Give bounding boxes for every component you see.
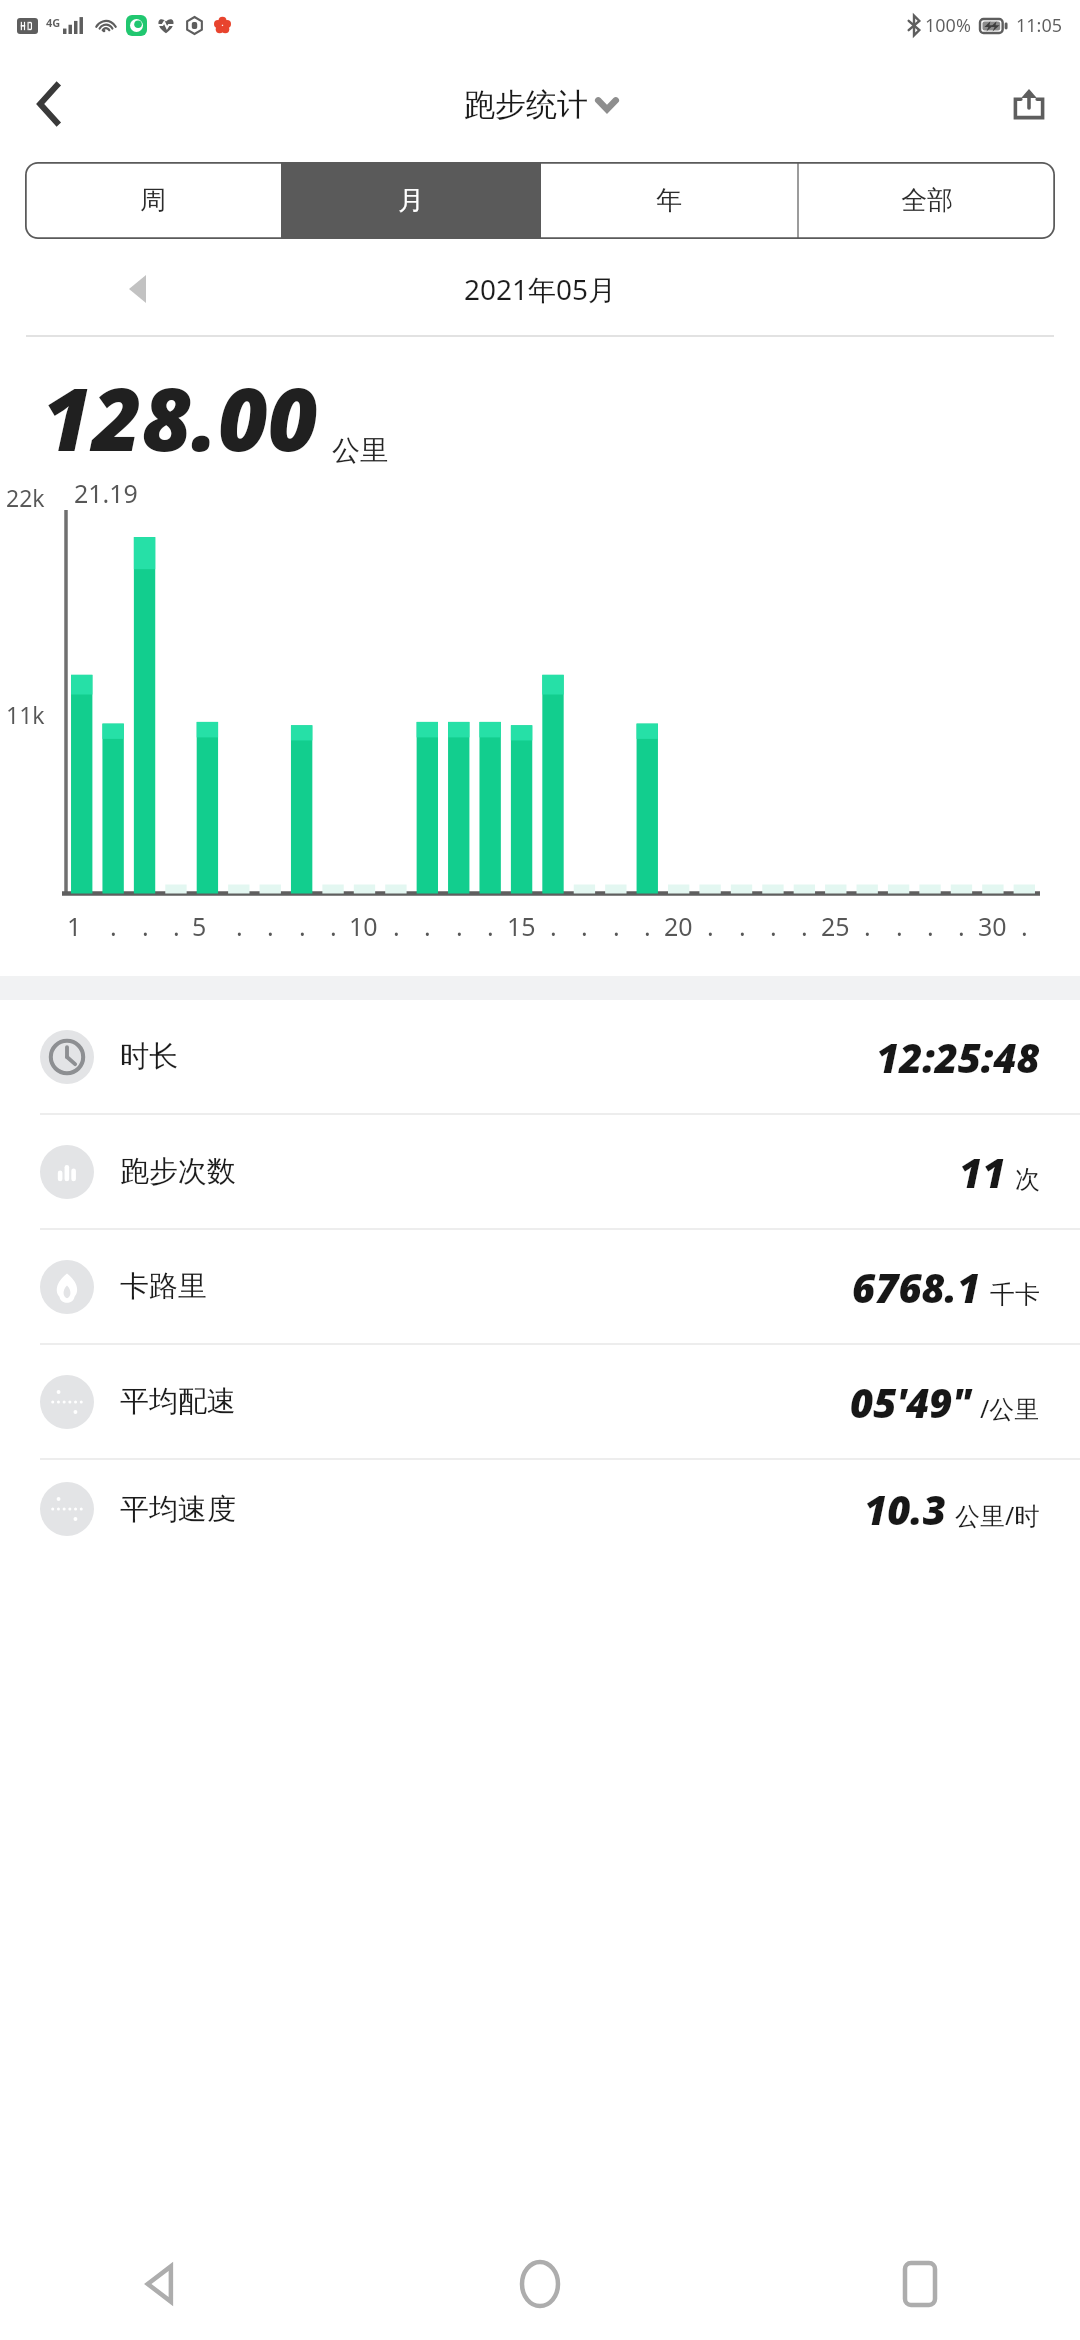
staticText: . xyxy=(424,909,431,943)
button[interactable]: 年 xyxy=(541,162,797,239)
button[interactable]: 平均配速 xyxy=(0,1345,1080,1458)
staticText: . xyxy=(330,909,337,943)
staticText: . xyxy=(110,909,117,943)
staticText: 6768.1 xyxy=(852,1260,981,1314)
button[interactable]: 周 xyxy=(25,162,281,239)
staticText: 公里/时 xyxy=(955,1498,1040,1532)
staticText: . xyxy=(707,909,714,943)
staticText: . xyxy=(1021,909,1028,943)
staticText: 月 xyxy=(398,184,424,217)
button[interactable]: Home xyxy=(498,2242,582,2326)
staticText: 11:05 xyxy=(1016,13,1063,38)
staticText: 11 xyxy=(959,1145,1006,1199)
staticText: 跑步次数 xyxy=(120,1153,236,1190)
staticText: . xyxy=(644,909,651,943)
staticText: . xyxy=(393,909,400,943)
button[interactable]: 时长 xyxy=(0,1000,1080,1113)
staticText: 卡路里 xyxy=(120,1268,207,1305)
staticText: 4G xyxy=(46,15,61,30)
staticText: . xyxy=(267,909,274,943)
button[interactable]: 跑步统计 xyxy=(464,85,617,124)
staticText: . xyxy=(173,909,180,943)
staticText: 22k xyxy=(6,482,45,513)
staticText: 25 xyxy=(821,909,850,943)
staticText: . xyxy=(550,909,557,943)
staticText: . xyxy=(142,909,149,943)
button[interactable]: 月 xyxy=(283,162,539,239)
staticText: /公里 xyxy=(980,1391,1040,1425)
staticText: . xyxy=(958,909,965,943)
button[interactable]: Recents xyxy=(878,2242,962,2326)
staticText: 时长 xyxy=(120,1038,178,1075)
staticText: . xyxy=(299,909,306,943)
staticText: . xyxy=(487,909,494,943)
staticText: 跑步统计 xyxy=(464,85,588,124)
staticText: 平均配速 xyxy=(120,1383,236,1420)
staticText: 全部 xyxy=(901,184,953,217)
staticText: . xyxy=(896,909,903,943)
button[interactable]: Share xyxy=(994,69,1064,139)
staticText: 平均速度 xyxy=(120,1491,236,1528)
staticText: 11k xyxy=(6,699,45,730)
staticText: 10.3 xyxy=(864,1482,946,1536)
staticText: 2021年05月 xyxy=(464,270,617,308)
staticText: 05'49" xyxy=(850,1375,971,1429)
staticText: 21.19 xyxy=(74,476,138,510)
staticText: . xyxy=(236,909,243,943)
button[interactable]: Back xyxy=(118,2242,202,2326)
staticText: . xyxy=(581,909,588,943)
staticText: 128.00 xyxy=(42,359,318,476)
staticText: . xyxy=(864,909,871,943)
button[interactable]: 卡路里 xyxy=(0,1230,1080,1343)
staticText: 公里 xyxy=(332,433,388,468)
staticText: . xyxy=(770,909,777,943)
staticText: 年 xyxy=(656,184,682,217)
staticText: 30 xyxy=(978,909,1007,943)
staticText: . xyxy=(927,909,934,943)
button[interactable]: Previous month xyxy=(108,260,166,318)
staticText: . xyxy=(613,909,620,943)
staticText: 12:25:48 xyxy=(876,1030,1040,1084)
staticText: . xyxy=(801,909,808,943)
button[interactable]: Back xyxy=(14,69,84,139)
staticText: 千卡 xyxy=(990,1279,1040,1310)
staticText: 5 xyxy=(192,909,207,943)
staticText: 100% xyxy=(925,13,971,38)
staticText: 1 xyxy=(67,909,82,943)
staticText: . xyxy=(456,909,463,943)
button[interactable]: 跑步次数 xyxy=(0,1115,1080,1228)
staticText: . xyxy=(739,909,746,943)
staticText: 20 xyxy=(664,909,693,943)
staticText: 周 xyxy=(140,184,166,217)
button[interactable]: 全部 xyxy=(799,162,1055,239)
staticText: 次 xyxy=(1015,1164,1040,1195)
staticText: 10 xyxy=(349,909,378,943)
button[interactable]: 平均速度 xyxy=(0,1460,1080,1518)
staticText: 15 xyxy=(507,909,536,943)
